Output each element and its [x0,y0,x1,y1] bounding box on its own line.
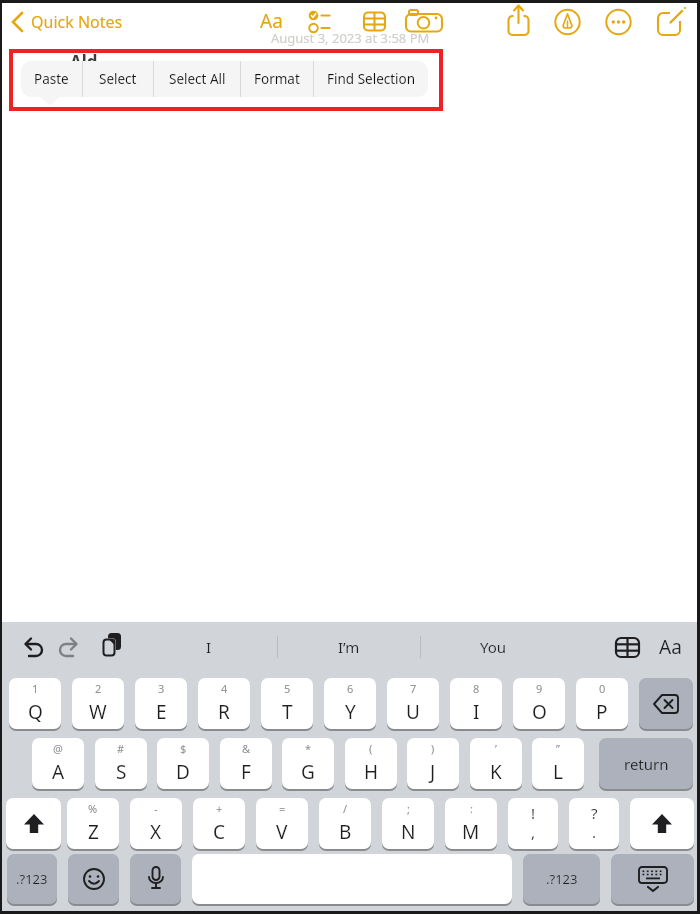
button[interactable]: You [420,630,566,664]
staticText: Select [99,70,137,88]
staticText: . [592,822,597,842]
button[interactable] [612,632,644,662]
button[interactable]: $ [157,738,209,789]
button[interactable]: 8 [450,678,502,729]
staticText: ” [556,741,560,756]
staticText: 2 [95,681,102,696]
button[interactable]: / [319,798,371,849]
button[interactable]: return [599,738,693,789]
staticText: ; [407,801,410,816]
staticText: ? [591,803,598,823]
button[interactable]: Format [241,61,313,97]
button[interactable]: 9 [513,678,565,729]
staticText: D [176,759,190,785]
button[interactable] [358,4,394,38]
button[interactable]: Select [83,61,153,97]
staticText: Quick Notes [31,11,123,33]
staticText: H [364,759,379,785]
staticText: .?123 [16,870,48,888]
staticText: 3 [158,681,165,696]
button[interactable] [192,854,512,904]
staticText: E [156,699,167,725]
button[interactable] [502,2,536,40]
button[interactable] [652,3,690,41]
button[interactable]: ? [569,798,619,849]
button[interactable] [56,633,86,663]
button[interactable]: ; [382,798,434,849]
button[interactable]: I’m [277,630,420,664]
button[interactable]: Aa [650,630,690,664]
button[interactable]: # [95,738,147,789]
staticText: 5 [284,681,291,696]
button[interactable]: Aa [252,4,290,38]
staticText: 8 [473,681,480,696]
staticText: Format [254,70,300,88]
button[interactable]: 6 [324,678,376,729]
button[interactable]: 4 [198,678,250,729]
button[interactable]: : [445,798,497,849]
button[interactable]: 0 [576,678,628,729]
button[interactable]: I [140,630,277,664]
staticText: Z [88,819,99,845]
button[interactable] [300,4,336,38]
button[interactable]: Find Selection [314,61,428,97]
button[interactable] [404,4,444,38]
button[interactable]: @ [32,738,84,789]
staticText: X [150,819,162,845]
button[interactable]: & [220,738,272,789]
staticText: L [553,759,563,785]
staticText: W [89,699,107,725]
button[interactable] [639,678,693,729]
staticText: N [401,819,416,845]
staticText: A [52,759,65,785]
staticText: & [242,741,251,756]
staticText: , [531,822,536,842]
button[interactable]: - [130,798,182,849]
button[interactable]: 5 [261,678,313,729]
button[interactable]: 2 [72,678,124,729]
button[interactable]: ( [345,738,397,789]
staticText: = [279,801,286,816]
staticText: % [88,801,98,816]
button[interactable]: ! [508,798,558,849]
staticText: J [430,759,436,785]
button[interactable] [630,798,694,849]
button[interactable]: 3 [135,678,187,729]
button[interactable] [68,854,119,904]
button[interactable]: * [282,738,334,789]
staticText: Y [345,699,356,725]
button[interactable] [550,4,586,40]
staticText: B [339,819,352,845]
button[interactable]: ” [532,738,584,789]
staticText: ) [431,741,435,756]
button[interactable] [99,631,129,663]
button[interactable]: + [193,798,245,849]
staticText: You [480,637,507,657]
staticText: P [596,699,608,725]
button[interactable]: = [256,798,308,849]
button[interactable]: 1 [9,678,61,729]
button[interactable]: ) [407,738,459,789]
button[interactable]: Quick Notes [8,6,128,36]
staticText: I’m [338,637,360,657]
staticText: I [473,699,480,725]
button[interactable] [6,798,61,849]
button[interactable] [601,4,637,40]
staticText: / [343,801,348,816]
button[interactable] [130,854,181,904]
staticText: 1 [32,681,39,696]
staticText: Aa [659,634,682,660]
button[interactable]: .?123 [7,854,57,904]
button[interactable]: 7 [387,678,439,729]
button[interactable]: .?123 [523,854,600,904]
button[interactable]: Select All [154,61,240,97]
staticText: # [117,741,125,756]
button[interactable] [16,633,46,663]
staticText: I [206,637,212,657]
button[interactable]: ’ [470,738,522,789]
button[interactable]: Paste [21,61,82,97]
staticText: R [218,699,230,725]
button[interactable]: % [67,798,119,849]
staticText: 6 [347,681,354,696]
button[interactable] [611,854,694,904]
